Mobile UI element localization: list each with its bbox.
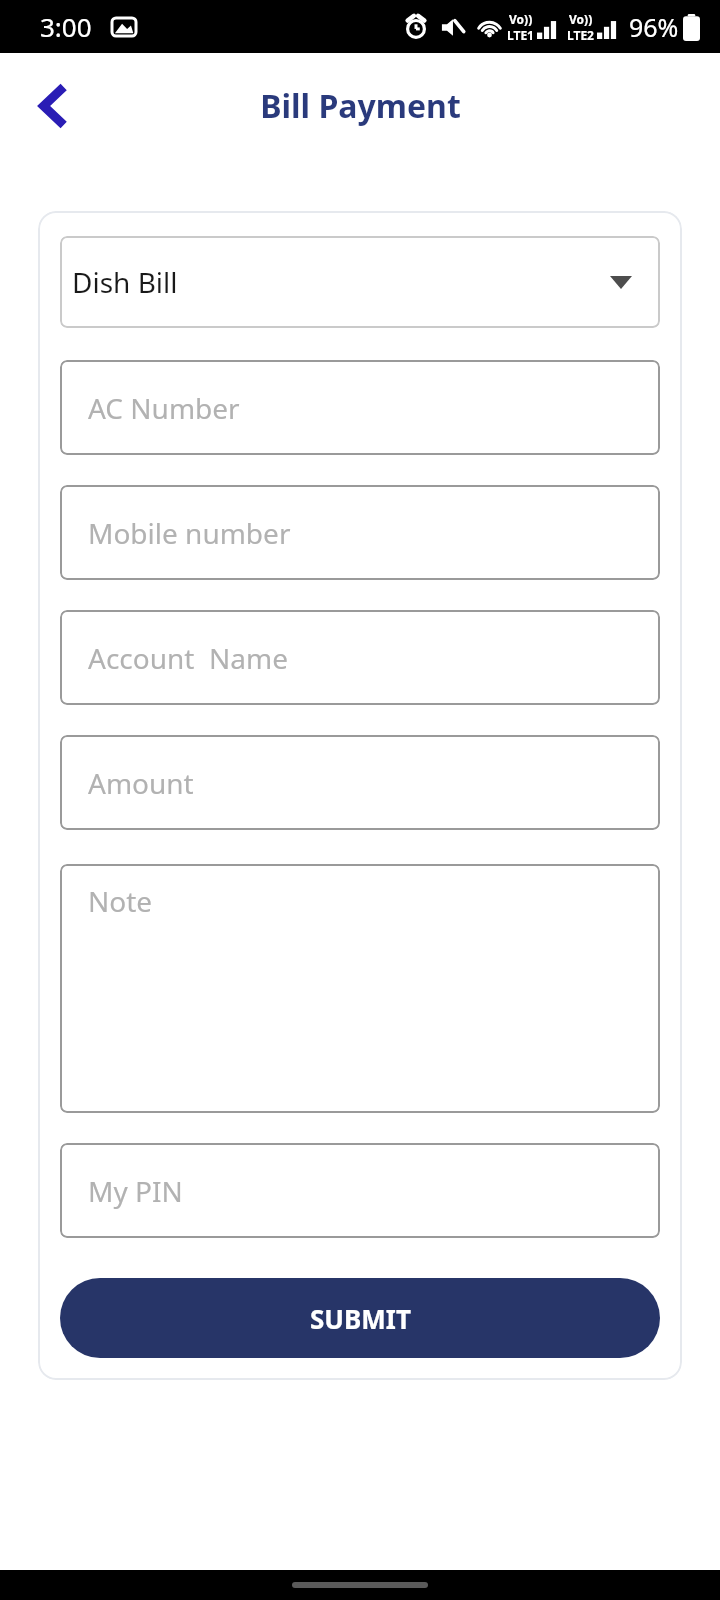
- staticText: SUBMIT: [310, 1301, 411, 1336]
- staticText: Account Name: [88, 639, 288, 677]
- staticText: LTE1: [507, 27, 534, 43]
- staticText: Note: [88, 882, 153, 920]
- staticText: AC Number: [88, 389, 240, 427]
- staticText: LTE2: [567, 27, 594, 43]
- staticText: My PIN: [88, 1172, 183, 1210]
- button[interactable]: SUBMIT: [60, 1278, 660, 1358]
- staticText: Dish Bill: [72, 263, 610, 301]
- button[interactable]: Mobile number: [60, 485, 660, 580]
- staticText: 3:00: [40, 9, 92, 44]
- staticText: Mobile number: [88, 514, 291, 552]
- button[interactable]: My PIN: [60, 1143, 660, 1238]
- button[interactable]: Note: [60, 864, 660, 1113]
- button[interactable]: AC Number: [60, 360, 660, 455]
- button[interactable]: Dish Bill: [60, 236, 660, 328]
- staticText: Amount: [88, 764, 194, 802]
- button[interactable]: Account Name: [60, 610, 660, 705]
- staticText: Bill Payment: [260, 84, 461, 128]
- staticText: Vo)): [509, 11, 533, 27]
- staticText: Vo)): [569, 11, 593, 27]
- button[interactable]: Amount: [60, 735, 660, 830]
- staticText: 96%: [629, 10, 679, 44]
- button[interactable]: Back: [20, 74, 84, 138]
